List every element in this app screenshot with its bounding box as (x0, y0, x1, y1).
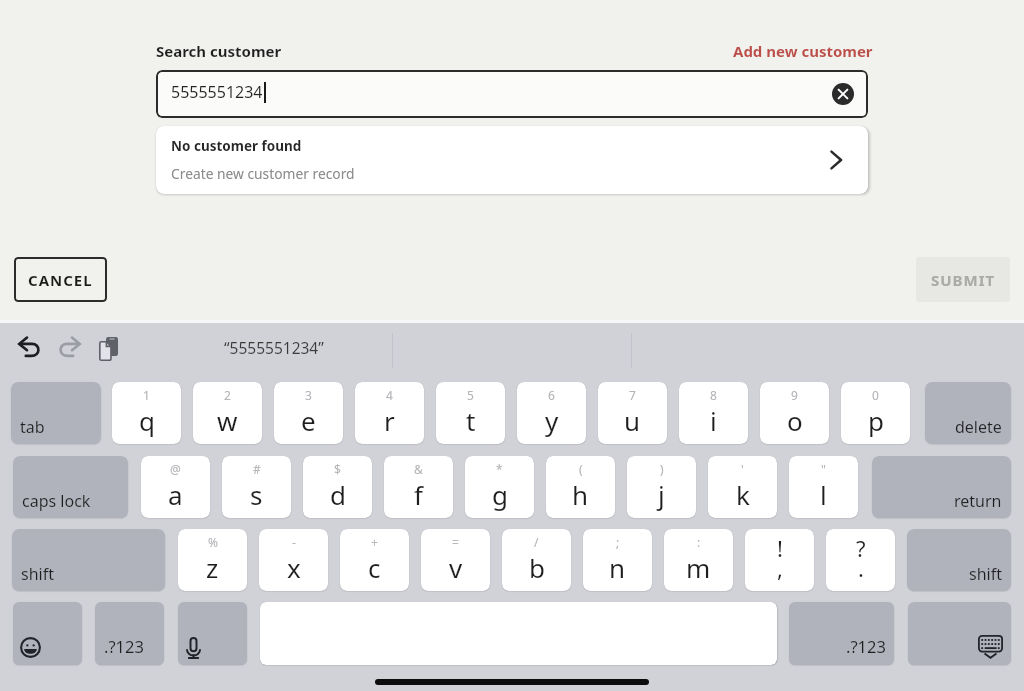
button[interactable]: ) (627, 456, 696, 518)
staticText: v (449, 550, 463, 585)
staticText: 4 (386, 387, 393, 403)
staticText: * (496, 461, 503, 477)
staticText: p (868, 403, 884, 438)
button[interactable]: ' (708, 456, 777, 518)
staticText: i (710, 403, 717, 438)
button[interactable]: Paste (99, 337, 118, 361)
staticText: f (414, 477, 423, 512)
staticText: 8 (710, 387, 717, 403)
staticText: z (206, 550, 219, 585)
button[interactable]: SUBMIT (916, 257, 1010, 302)
button[interactable]: Undo (14, 334, 45, 364)
staticText: No customer found (171, 137, 302, 155)
staticText: 3 (305, 387, 312, 403)
button[interactable]: & (384, 456, 453, 518)
staticText: Search customer (156, 41, 282, 61)
button[interactable]: .?123 (789, 602, 894, 665)
button[interactable]: 5 (436, 382, 505, 444)
button[interactable]: Redo (54, 334, 85, 364)
button[interactable]: ! (745, 529, 814, 591)
button[interactable]: 8 (679, 382, 748, 444)
button[interactable]: delete (925, 382, 1011, 444)
staticText: + (371, 534, 378, 550)
button[interactable]: shift (907, 529, 1011, 591)
button[interactable]: 0 (841, 382, 910, 444)
staticText: c (368, 550, 381, 585)
button[interactable]: .?123 (95, 602, 164, 665)
button[interactable]: 4 (355, 382, 424, 444)
staticText: . (858, 553, 864, 583)
button[interactable]: ; (583, 529, 652, 591)
button[interactable]: + (340, 529, 409, 591)
staticText: t (466, 403, 476, 438)
staticText: SUBMIT (931, 270, 996, 290)
button[interactable]: = (421, 529, 490, 591)
staticText: ' (741, 461, 744, 477)
staticText: s (250, 477, 263, 512)
button[interactable]: # (222, 456, 291, 518)
staticText: ! (777, 533, 783, 563)
staticText: u (624, 403, 641, 438)
button[interactable]: Emoji (13, 602, 82, 665)
staticText: .?123 (846, 635, 886, 657)
button[interactable]: CANCEL (14, 257, 107, 302)
staticText: " (821, 461, 826, 477)
staticText: “5555551234” (224, 337, 324, 358)
button[interactable]: caps lock (13, 456, 128, 518)
staticText: # (253, 461, 261, 477)
button[interactable]: % (178, 529, 247, 591)
staticText: / (534, 534, 539, 550)
button[interactable]: @ (141, 456, 210, 518)
button[interactable]: Voice input (178, 602, 247, 665)
button[interactable]: : (664, 529, 733, 591)
button[interactable]: Clear (832, 83, 854, 105)
staticText: 9 (791, 387, 798, 403)
staticText: 6 (548, 387, 555, 403)
staticText: $ (334, 461, 341, 477)
button[interactable]: 9 (760, 382, 829, 444)
button[interactable]: * (465, 456, 534, 518)
staticText: & (414, 461, 423, 477)
staticText: e (301, 403, 316, 438)
button[interactable]: " (789, 456, 858, 518)
staticText: k (736, 477, 750, 512)
staticText: r (384, 403, 395, 438)
button[interactable]: $ (303, 456, 372, 518)
button[interactable]: 3 (274, 382, 343, 444)
staticText: Create new customer record (171, 164, 355, 183)
staticText: , (777, 553, 783, 583)
button[interactable]: 5555551234 (156, 70, 868, 118)
staticText: l (820, 477, 827, 512)
staticText: x (287, 550, 301, 585)
staticText: Add new customer (733, 41, 873, 61)
button[interactable]: ? (826, 529, 895, 591)
button[interactable]: ( (546, 456, 615, 518)
button[interactable]: tab (11, 382, 101, 444)
staticText: caps lock (22, 490, 91, 512)
button[interactable]: return (872, 456, 1011, 518)
staticText: CANCEL (28, 270, 93, 290)
button[interactable]: Hide keyboard (908, 602, 1011, 665)
staticText: q (139, 403, 155, 438)
staticText: ; (616, 534, 620, 550)
button[interactable]: 7 (598, 382, 667, 444)
staticText: @ (170, 461, 181, 477)
button[interactable]: - (259, 529, 328, 591)
staticText: d (330, 477, 346, 512)
staticText: shift (21, 563, 54, 585)
staticText: - (292, 534, 296, 550)
staticText: b (529, 550, 545, 585)
staticText: w (217, 403, 238, 438)
staticText: : (697, 534, 701, 550)
button[interactable]: 6 (517, 382, 586, 444)
button[interactable]: / (502, 529, 571, 591)
button[interactable]: shift (12, 529, 165, 591)
button[interactable]: Add new customer (733, 41, 873, 61)
button[interactable]: No customer found (156, 126, 868, 194)
button[interactable]: 1 (112, 382, 181, 444)
button[interactable]: 2 (193, 382, 262, 444)
staticText: 5 (467, 387, 474, 403)
staticText: j (658, 477, 665, 512)
staticText: 0 (872, 387, 879, 403)
